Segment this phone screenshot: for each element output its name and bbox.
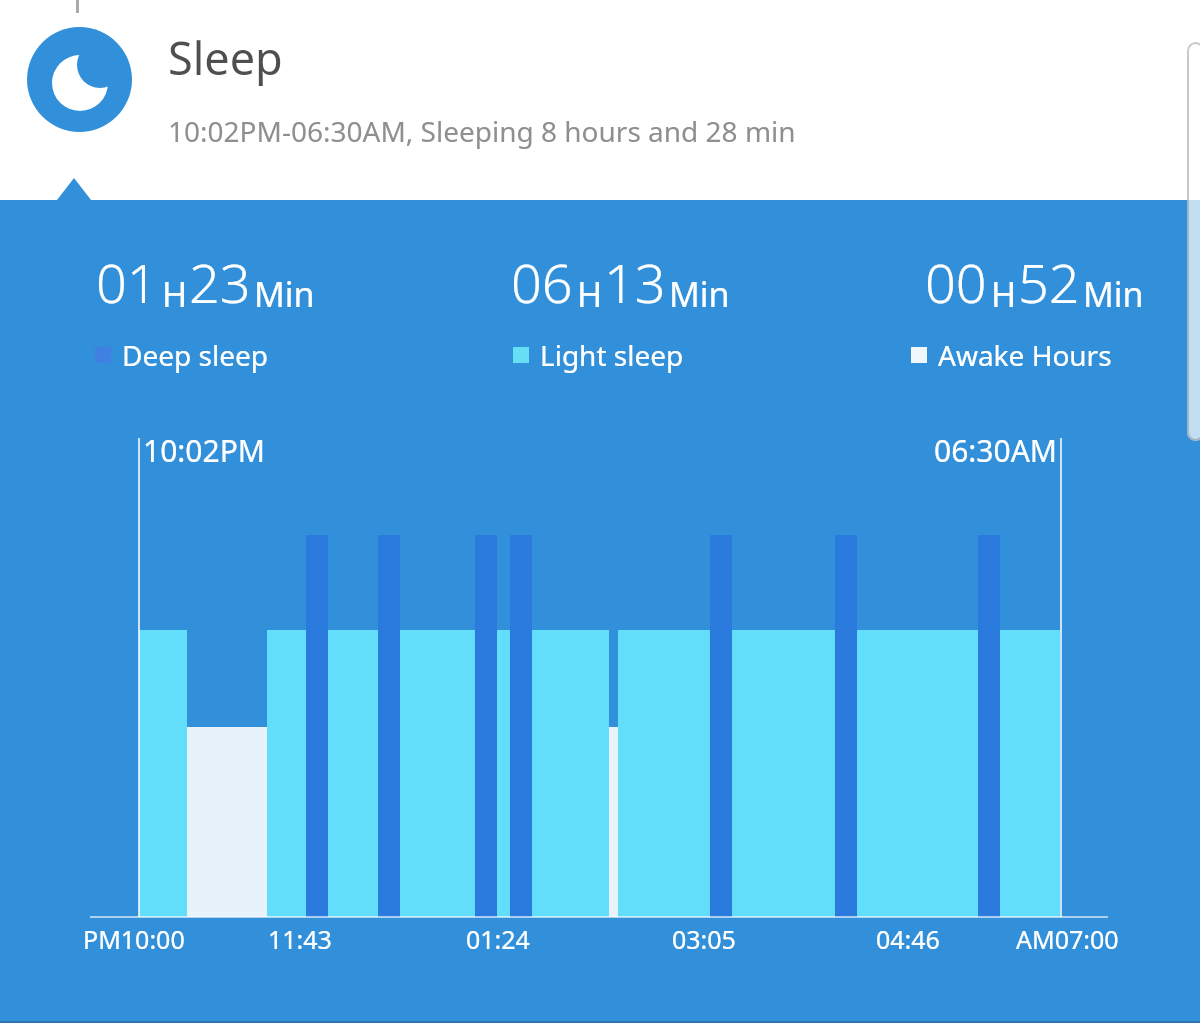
button[interactable]: Sleep xyxy=(0,20,900,180)
staticText: 06:30AM xyxy=(934,430,1058,471)
staticText: Awake Hours xyxy=(938,336,1112,374)
staticText: Deep sleep xyxy=(122,336,268,374)
staticText: 10:02PM xyxy=(143,430,266,471)
staticText: 01 xyxy=(96,245,158,319)
staticText: Sleep xyxy=(168,27,283,88)
staticText: Min xyxy=(1083,271,1144,317)
staticText: 04:46 xyxy=(876,922,940,956)
staticText: AM07:00 xyxy=(1016,922,1119,956)
staticText: H xyxy=(991,271,1017,317)
staticText: Min xyxy=(254,271,315,317)
staticText: Min xyxy=(669,271,730,317)
staticText: 23 xyxy=(189,245,251,319)
staticText: Light sleep xyxy=(540,336,684,374)
staticText: H xyxy=(162,271,188,317)
staticText: 10:02PM-06:30AM, Sleeping 8 hours and 28… xyxy=(168,112,796,150)
staticText: 52 xyxy=(1018,245,1080,319)
staticText: 13 xyxy=(604,245,666,319)
staticText: 06 xyxy=(511,245,573,319)
staticText: 03:05 xyxy=(672,922,736,956)
staticText: PM10:00 xyxy=(83,922,185,956)
staticText: 00 xyxy=(925,245,987,319)
staticText: 01:24 xyxy=(466,922,530,956)
staticText: H xyxy=(577,271,603,317)
staticText: 11:43 xyxy=(268,922,332,956)
